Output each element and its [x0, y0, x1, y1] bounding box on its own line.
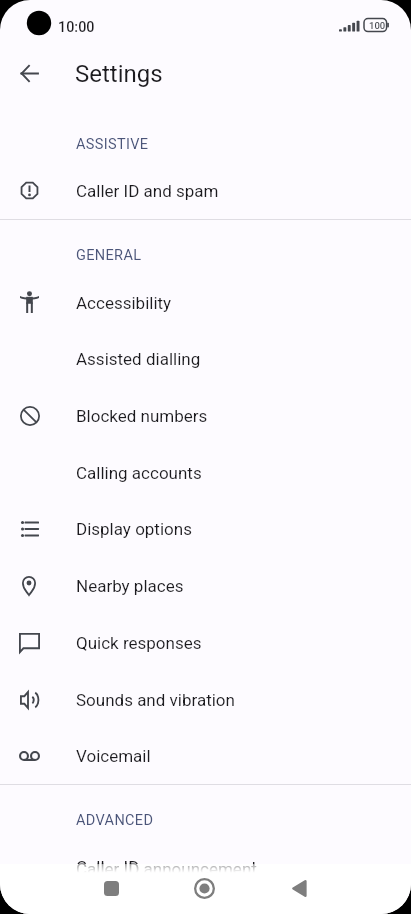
button[interactable]: Home [180, 864, 228, 912]
staticText: 100 [369, 20, 386, 31]
staticText: 10:00 [58, 19, 95, 36]
staticText: Settings [75, 60, 163, 88]
staticText: Assisted dialling [76, 349, 201, 369]
staticText: Display options [76, 519, 192, 539]
button[interactable]: Quick responses [0, 614, 411, 671]
button[interactable]: Caller ID and spam [0, 162, 411, 219]
staticText: Voicemail [76, 746, 151, 766]
button[interactable]: Recent apps [87, 864, 135, 912]
staticText: Caller ID announcement [76, 859, 257, 879]
staticText: Blocked numbers [76, 406, 208, 426]
button[interactable]: Voicemail [0, 727, 411, 784]
button[interactable]: Back [275, 864, 323, 912]
staticText: Caller ID announcement [76, 857, 257, 877]
button[interactable]: Blocked numbers [0, 387, 411, 444]
staticText: GENERAL [76, 247, 142, 264]
staticText: Sounds and vibration [76, 690, 235, 710]
staticText: Caller ID and spam [76, 181, 219, 201]
staticText: Accessibility [76, 293, 172, 313]
staticText: ASSISTIVE [76, 136, 149, 153]
staticText: Quick responses [76, 633, 202, 653]
button[interactable]: Sounds and vibration [0, 671, 411, 728]
button[interactable]: Caller ID announcement [0, 838, 411, 895]
staticText: ADVANCED [76, 812, 154, 829]
button[interactable]: Nearby places [0, 557, 411, 614]
button[interactable]: Calling accounts [0, 444, 411, 501]
button[interactable]: Back [5, 49, 53, 97]
staticText: Nearby places [76, 576, 184, 596]
button[interactable]: Accessibility [0, 274, 411, 331]
staticText: Calling accounts [76, 463, 202, 483]
button[interactable]: Assisted dialling [0, 330, 411, 387]
button[interactable]: Display options [0, 500, 411, 557]
